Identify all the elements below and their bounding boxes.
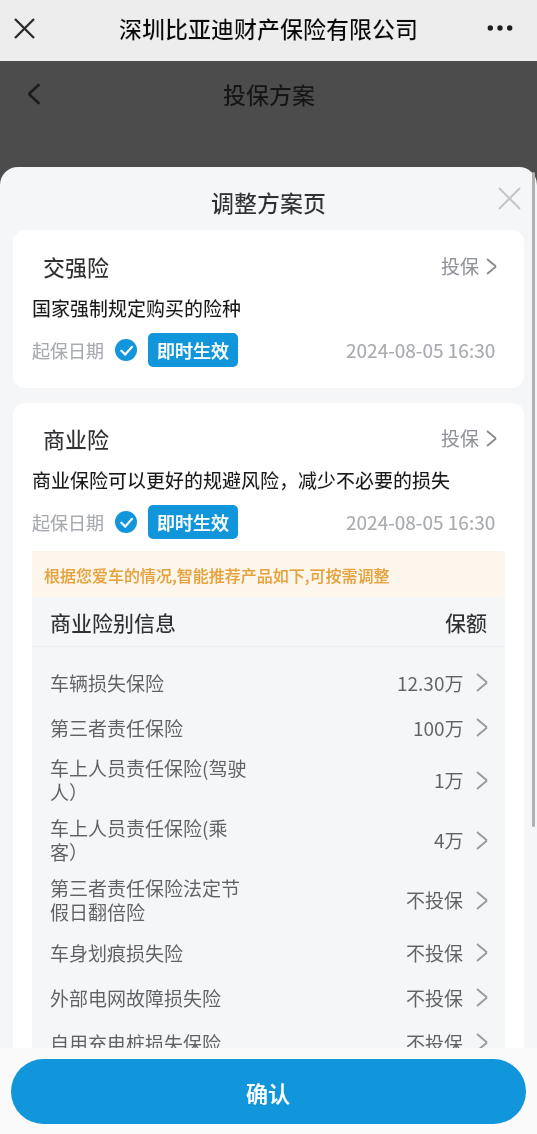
staticText: 车上人员责任保险(驾驶人）: [50, 754, 252, 806]
button[interactable]: 车上人员责任保险(驾驶人）: [32, 750, 505, 810]
staticText: 车上人员责任保险(乘客）: [50, 814, 252, 866]
staticText: 4万: [434, 826, 464, 854]
staticText: 投保方案: [223, 77, 315, 110]
staticText: 2024-08-05 16:30: [346, 336, 496, 364]
staticText: 即时生效: [157, 509, 229, 535]
button[interactable]: 外部电网故障损失险: [32, 975, 505, 1020]
button[interactable]: 确认: [11, 1059, 526, 1124]
button[interactable]: 即时生效: [148, 333, 238, 367]
staticText: 12.30万: [397, 669, 464, 697]
staticText: 投保: [441, 424, 480, 452]
staticText: 不投保: [406, 939, 464, 967]
staticText: 起保日期: [32, 337, 104, 363]
staticText: 根据您爱车的情况,智能推荐产品如下,可按需调整: [44, 563, 390, 586]
staticText: 车身划痕损失险: [50, 939, 184, 967]
button[interactable]: 第三者责任保险: [32, 705, 505, 750]
button[interactable]: 车上人员责任保险(乘客）: [32, 810, 505, 870]
button[interactable]: 自用充电桩损失保险: [32, 1020, 505, 1065]
button[interactable]: Back: [12, 71, 58, 117]
staticText: 2024-08-05 16:30: [346, 508, 496, 536]
staticText: 车辆损失保险: [50, 669, 165, 697]
staticText: 商业险别信息: [50, 607, 176, 637]
staticText: 即时生效: [157, 337, 229, 363]
staticText: 交强险: [43, 250, 110, 282]
button[interactable]: 即时生效: [148, 505, 238, 539]
button[interactable]: Close sheet: [481, 167, 537, 230]
button[interactable]: Close: [4, 0, 44, 59]
staticText: 第三者责任保险法定节假日翻倍险: [50, 874, 252, 926]
staticText: 国家强制规定购买的险种: [32, 294, 242, 322]
staticText: 商业险: [43, 422, 110, 454]
staticText: 确认: [246, 1076, 291, 1108]
staticText: 100万: [413, 714, 464, 742]
staticText: 不投保: [406, 886, 464, 914]
staticText: 1万: [434, 766, 464, 794]
staticText: 商业保险可以更好的规避风险，减少不必要的损失: [32, 466, 451, 494]
button[interactable]: 车身划痕损失险: [32, 930, 505, 975]
button[interactable]: 投保: [441, 424, 496, 452]
staticText: 外部电网故障损失险: [50, 984, 222, 1012]
button[interactable]: More options: [474, 0, 526, 58]
staticText: 深圳比亚迪财产保险有限公司: [119, 11, 418, 44]
staticText: 保额: [445, 607, 487, 637]
staticText: 第三者责任保险: [50, 714, 184, 742]
staticText: 自用充电桩损失保险: [50, 1029, 222, 1057]
staticText: 起保日期: [32, 509, 104, 535]
staticText: 不投保: [406, 1029, 464, 1057]
button[interactable]: 车辆损失保险: [32, 660, 505, 705]
staticText: 投保: [441, 252, 480, 280]
button[interactable]: 第三者责任保险法定节假日翻倍险: [32, 870, 505, 930]
staticText: 调整方案页: [211, 185, 326, 218]
button[interactable]: 投保: [441, 252, 496, 280]
staticText: 不投保: [406, 984, 464, 1012]
